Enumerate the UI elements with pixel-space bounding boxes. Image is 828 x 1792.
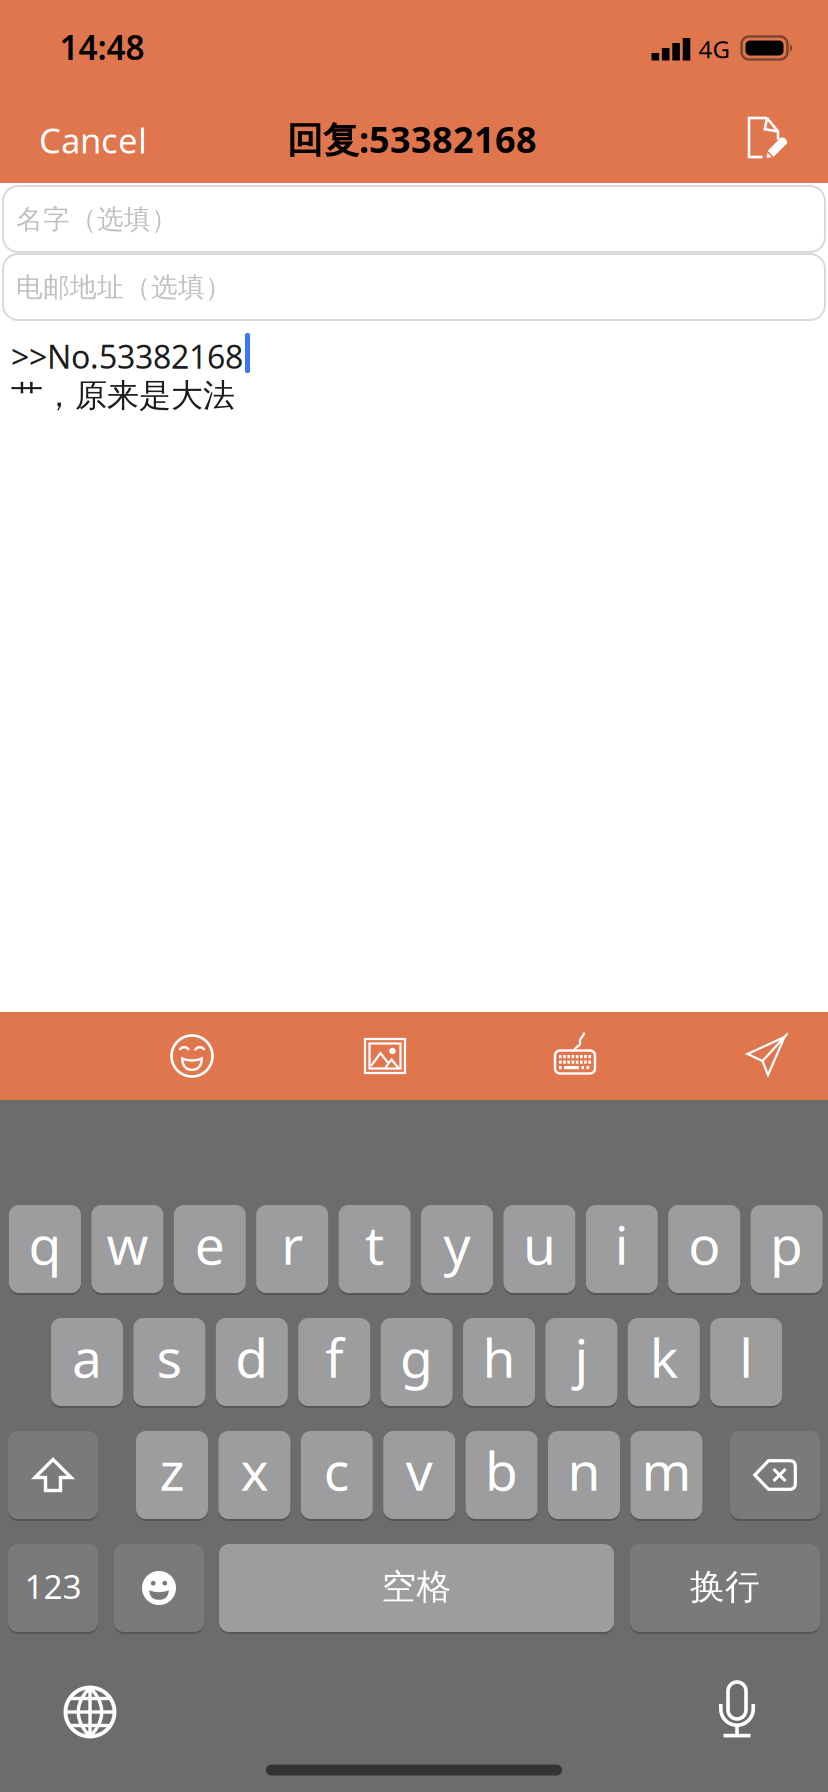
staticText: 回复:53382168 <box>287 115 537 163</box>
button[interactable]: g <box>381 1317 453 1407</box>
staticText: 空格 <box>381 1566 451 1608</box>
button[interactable]: Shift <box>8 1430 98 1520</box>
button[interactable]: 名字（选填） <box>3 186 825 252</box>
button[interactable]: s <box>133 1317 205 1407</box>
staticText: d <box>235 1322 268 1392</box>
button[interactable]: e <box>174 1204 246 1294</box>
staticText: >>No.53382168 <box>11 335 243 377</box>
staticText: z <box>159 1435 184 1505</box>
staticText: 123 <box>24 1564 81 1608</box>
button[interactable]: Send <box>746 1035 786 1076</box>
staticText: a <box>72 1322 102 1392</box>
staticText: y <box>443 1209 470 1279</box>
staticText: m <box>641 1435 691 1505</box>
staticText: s <box>156 1322 182 1392</box>
button[interactable]: Delete <box>730 1430 820 1520</box>
staticText: 电邮地址（选填） <box>16 271 232 304</box>
button[interactable]: z <box>136 1430 208 1520</box>
staticText: v <box>406 1435 433 1505</box>
button[interactable]: o <box>668 1204 740 1294</box>
button[interactable]: w <box>91 1204 163 1294</box>
staticText: 艹，原来是大法 <box>11 376 235 415</box>
staticText: h <box>482 1322 515 1392</box>
staticText: u <box>523 1209 556 1279</box>
button[interactable]: k <box>628 1317 700 1407</box>
button[interactable]: Emoticons <box>170 1034 214 1078</box>
staticText: t <box>365 1209 384 1279</box>
staticText: o <box>688 1209 720 1279</box>
button[interactable]: a <box>51 1317 123 1407</box>
button[interactable]: Attach photo <box>365 1039 405 1073</box>
button[interactable]: 123 <box>8 1543 98 1633</box>
button[interactable]: h <box>463 1317 535 1407</box>
staticText: x <box>240 1435 268 1505</box>
staticText: n <box>567 1435 600 1505</box>
staticText: 4G <box>698 33 729 65</box>
button[interactable]: 换行 <box>630 1543 820 1633</box>
button[interactable]: 电邮地址（选填） <box>3 254 825 320</box>
button[interactable]: Post <box>747 116 789 160</box>
button[interactable]: u <box>503 1204 575 1294</box>
button[interactable]: q <box>9 1204 81 1294</box>
button[interactable]: Keyboard <box>555 1030 595 1075</box>
staticText: q <box>28 1209 61 1279</box>
staticText: 名字（选填） <box>16 203 178 236</box>
button[interactable]: y <box>421 1204 493 1294</box>
button[interactable]: i <box>586 1204 658 1294</box>
staticText: i <box>615 1209 629 1279</box>
staticText: f <box>325 1322 343 1392</box>
staticText: l <box>739 1322 753 1392</box>
staticText: 14:48 <box>59 25 144 69</box>
staticText: Cancel <box>39 117 147 163</box>
button[interactable]: Cancel <box>39 117 147 163</box>
staticText: b <box>485 1435 518 1505</box>
button[interactable]: n <box>548 1430 620 1520</box>
button[interactable]: m <box>630 1430 702 1520</box>
button[interactable]: p <box>751 1204 823 1294</box>
staticText: e <box>195 1209 225 1279</box>
staticText: 换行 <box>690 1566 760 1608</box>
button[interactable]: Emoji <box>114 1543 204 1633</box>
staticText: w <box>106 1209 148 1279</box>
button[interactable]: Next keyboard <box>64 1686 116 1738</box>
staticText: c <box>324 1435 350 1505</box>
button[interactable]: x <box>218 1430 290 1520</box>
button[interactable]: j <box>545 1317 617 1407</box>
button[interactable]: f <box>298 1317 370 1407</box>
button[interactable]: 空格 <box>219 1543 614 1633</box>
button[interactable]: c <box>301 1430 373 1520</box>
button[interactable]: Dictation <box>719 1682 755 1738</box>
button[interactable]: v <box>383 1430 455 1520</box>
button[interactable]: b <box>466 1430 538 1520</box>
button[interactable]: d <box>216 1317 288 1407</box>
button[interactable]: l <box>710 1317 782 1407</box>
staticText: k <box>650 1322 678 1392</box>
button[interactable]: r <box>256 1204 328 1294</box>
staticText: g <box>400 1322 433 1392</box>
button[interactable]: t <box>339 1204 411 1294</box>
staticText: p <box>770 1209 803 1279</box>
staticText: j <box>574 1322 588 1392</box>
staticText: r <box>281 1209 303 1279</box>
